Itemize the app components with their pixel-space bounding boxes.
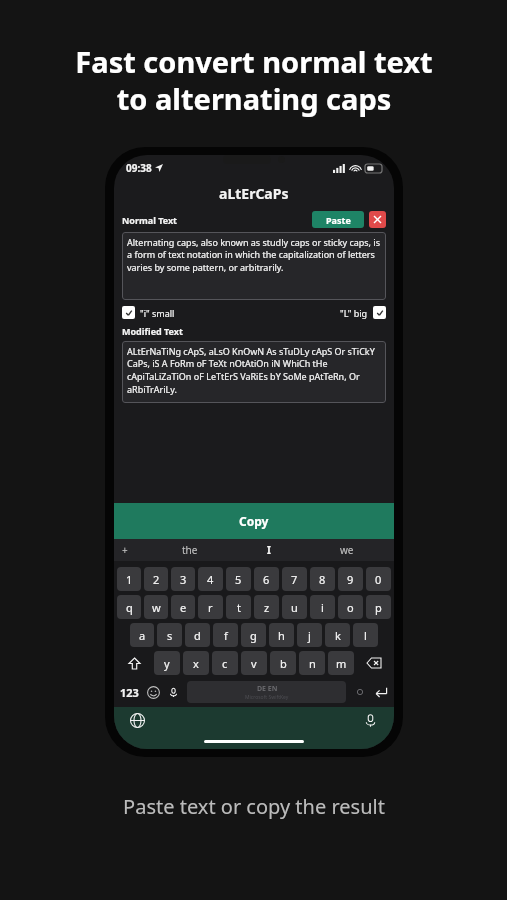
button[interactable]: c: [212, 651, 238, 675]
staticText: 1: [126, 572, 133, 587]
button[interactable]: "i" small: [122, 306, 175, 319]
button[interactable]: 9: [338, 567, 363, 591]
button[interactable]: we: [340, 543, 354, 557]
staticText: "i" small: [140, 307, 175, 319]
button[interactable]: d: [185, 623, 210, 647]
staticText: x: [193, 656, 199, 671]
button[interactable]: Settings: [354, 686, 366, 698]
button[interactable]: 8: [310, 567, 335, 591]
button[interactable]: j: [297, 623, 322, 647]
button[interactable]: the: [182, 543, 198, 557]
button[interactable]: 4: [198, 567, 223, 591]
button[interactable]: i: [310, 595, 335, 619]
button[interactable]: n: [299, 651, 325, 675]
button[interactable]: Shift: [117, 651, 151, 675]
button[interactable]: +: [122, 543, 128, 557]
staticText: u: [291, 600, 298, 615]
staticText: Modified Text: [122, 325, 183, 337]
button[interactable]: b: [270, 651, 296, 675]
button[interactable]: "L" big: [340, 306, 386, 319]
button[interactable]: ALtErNaTiNg cApS, aLsO KnOwN As sTuDLy c…: [127, 345, 381, 399]
button[interactable]: k: [325, 623, 350, 647]
staticText: m: [336, 656, 347, 671]
staticText: k: [335, 628, 341, 643]
staticText: 4: [207, 572, 214, 587]
staticText: 2: [153, 572, 160, 587]
button[interactable]: 3: [171, 567, 195, 591]
button[interactable]: Clear: [369, 211, 386, 228]
staticText: s: [167, 628, 173, 643]
button[interactable]: e: [171, 595, 195, 619]
button[interactable]: a: [130, 623, 154, 647]
button[interactable]: I: [267, 543, 271, 557]
button[interactable]: g: [241, 623, 266, 647]
button[interactable]: f: [213, 623, 238, 647]
button[interactable]: z: [254, 595, 279, 619]
button[interactable]: w: [144, 595, 168, 619]
button[interactable]: q: [117, 595, 141, 619]
button[interactable]: [168, 687, 179, 698]
button[interactable]: Backspace: [357, 651, 391, 675]
button[interactable]: Copy: [114, 503, 394, 539]
staticText: r: [208, 600, 213, 615]
button[interactable]: 5: [226, 567, 251, 591]
staticText: 09:38: [126, 161, 152, 175]
staticText: q: [126, 600, 133, 615]
button[interactable]: Enter: [374, 685, 388, 699]
staticText: z: [264, 600, 270, 615]
button[interactable]: Paste: [312, 211, 364, 228]
button[interactable]: y: [154, 651, 180, 675]
button[interactable]: DE EN: [187, 681, 346, 703]
button[interactable]: 7: [282, 567, 307, 591]
button[interactable]: s: [157, 623, 182, 647]
button[interactable]: p: [366, 595, 391, 619]
staticText: d: [194, 628, 201, 643]
button[interactable]: o: [338, 595, 363, 619]
staticText: b: [280, 656, 287, 671]
staticText: t: [237, 600, 241, 615]
staticText: v: [251, 656, 257, 671]
button[interactable]: 2: [144, 567, 168, 591]
staticText: h: [278, 628, 285, 643]
staticText: Paste text or copy the result: [123, 793, 385, 820]
staticText: 0: [375, 572, 382, 587]
staticText: ALtErNaTiNg cApS, aLsO KnOwN As sTuDLy c…: [127, 345, 381, 396]
button[interactable]: 0: [366, 567, 391, 591]
staticText: y: [164, 656, 170, 671]
staticText: Fast convert normal text to alternating …: [75, 42, 433, 119]
staticText: 6: [263, 572, 270, 587]
button[interactable]: 123: [120, 685, 139, 700]
button[interactable]: Emoji: [147, 686, 160, 699]
staticText: 5: [235, 572, 242, 587]
button[interactable]: l: [353, 623, 378, 647]
button[interactable]: x: [183, 651, 209, 675]
staticText: j: [308, 628, 311, 643]
button[interactable]: v: [241, 651, 267, 675]
button[interactable]: t: [226, 595, 251, 619]
staticText: i: [321, 600, 324, 615]
button[interactable]: u: [282, 595, 307, 619]
staticText: 3: [180, 572, 187, 587]
button[interactable]: Voice input: [363, 713, 378, 728]
staticText: 7: [291, 572, 298, 587]
button[interactable]: r: [198, 595, 223, 619]
staticText: Alternating caps, also known as studly c…: [127, 236, 381, 274]
button[interactable]: h: [269, 623, 294, 647]
staticText: g: [250, 628, 257, 643]
staticText: l: [364, 628, 367, 643]
staticText: c: [222, 656, 228, 671]
button[interactable]: Language: [130, 713, 145, 728]
button[interactable]: 6: [254, 567, 279, 591]
staticText: a: [139, 628, 146, 643]
button[interactable]: Alternating caps, also known as studly c…: [127, 236, 381, 296]
button[interactable]: 1: [117, 567, 141, 591]
staticText: 8: [319, 572, 326, 587]
staticText: o: [347, 600, 354, 615]
staticText: Copy: [239, 513, 269, 529]
staticText: p: [375, 600, 382, 615]
staticText: f: [224, 628, 228, 643]
staticText: 9: [347, 572, 354, 587]
button[interactable]: m: [328, 651, 354, 675]
staticText: Paste: [326, 214, 351, 226]
staticText: "L" big: [340, 307, 368, 319]
